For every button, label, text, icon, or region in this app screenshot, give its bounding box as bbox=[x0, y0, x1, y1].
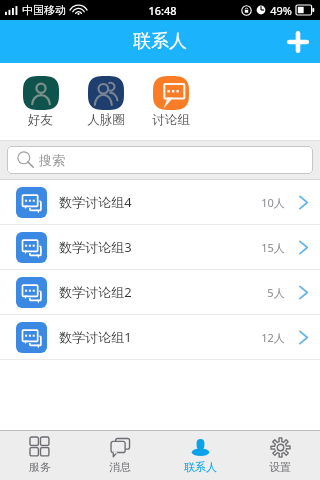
staticText: 设置 bbox=[269, 460, 291, 474]
staticText: 10人 bbox=[261, 195, 285, 210]
staticText: 中国移动 bbox=[22, 3, 66, 17]
staticText: 12人 bbox=[261, 330, 285, 345]
button[interactable]: 数学讨论组1 bbox=[0, 315, 320, 359]
button[interactable]: 数学讨论组3 bbox=[0, 225, 320, 269]
staticText: 好友 bbox=[28, 112, 53, 128]
staticText: 49% bbox=[270, 3, 292, 18]
staticText: 讨论组 bbox=[152, 112, 190, 128]
button[interactable]: 好友 bbox=[8, 63, 73, 128]
button[interactable]: 人脉圈 bbox=[73, 63, 138, 128]
staticText: 16:48 bbox=[148, 3, 177, 18]
button[interactable]: 搜索 bbox=[7, 146, 313, 174]
staticText: 消息 bbox=[109, 460, 131, 474]
staticText: 服务 bbox=[29, 460, 51, 474]
button[interactable]: 数学讨论组4 bbox=[0, 180, 320, 224]
button[interactable]: 服务 bbox=[0, 437, 80, 474]
staticText: 搜索 bbox=[39, 152, 65, 168]
button[interactable]: 设置 bbox=[240, 437, 320, 474]
button[interactable]: 讨论组 bbox=[138, 63, 203, 128]
staticText: 数学讨论组2 bbox=[59, 283, 132, 301]
staticText: 联系人 bbox=[133, 30, 187, 53]
staticText: 15人 bbox=[261, 240, 285, 255]
button[interactable]: 数学讨论组2 bbox=[0, 270, 320, 314]
staticText: 数学讨论组1 bbox=[59, 328, 132, 346]
staticText: 数学讨论组4 bbox=[59, 193, 132, 211]
staticText: 人脉圈 bbox=[87, 112, 125, 128]
staticText: 5人 bbox=[267, 285, 285, 300]
staticText: 联系人 bbox=[184, 460, 217, 474]
button[interactable]: 消息 bbox=[80, 437, 160, 474]
staticText: 数学讨论组3 bbox=[59, 238, 132, 256]
button[interactable]: Add bbox=[276, 20, 320, 63]
button[interactable]: 联系人 bbox=[160, 437, 240, 474]
